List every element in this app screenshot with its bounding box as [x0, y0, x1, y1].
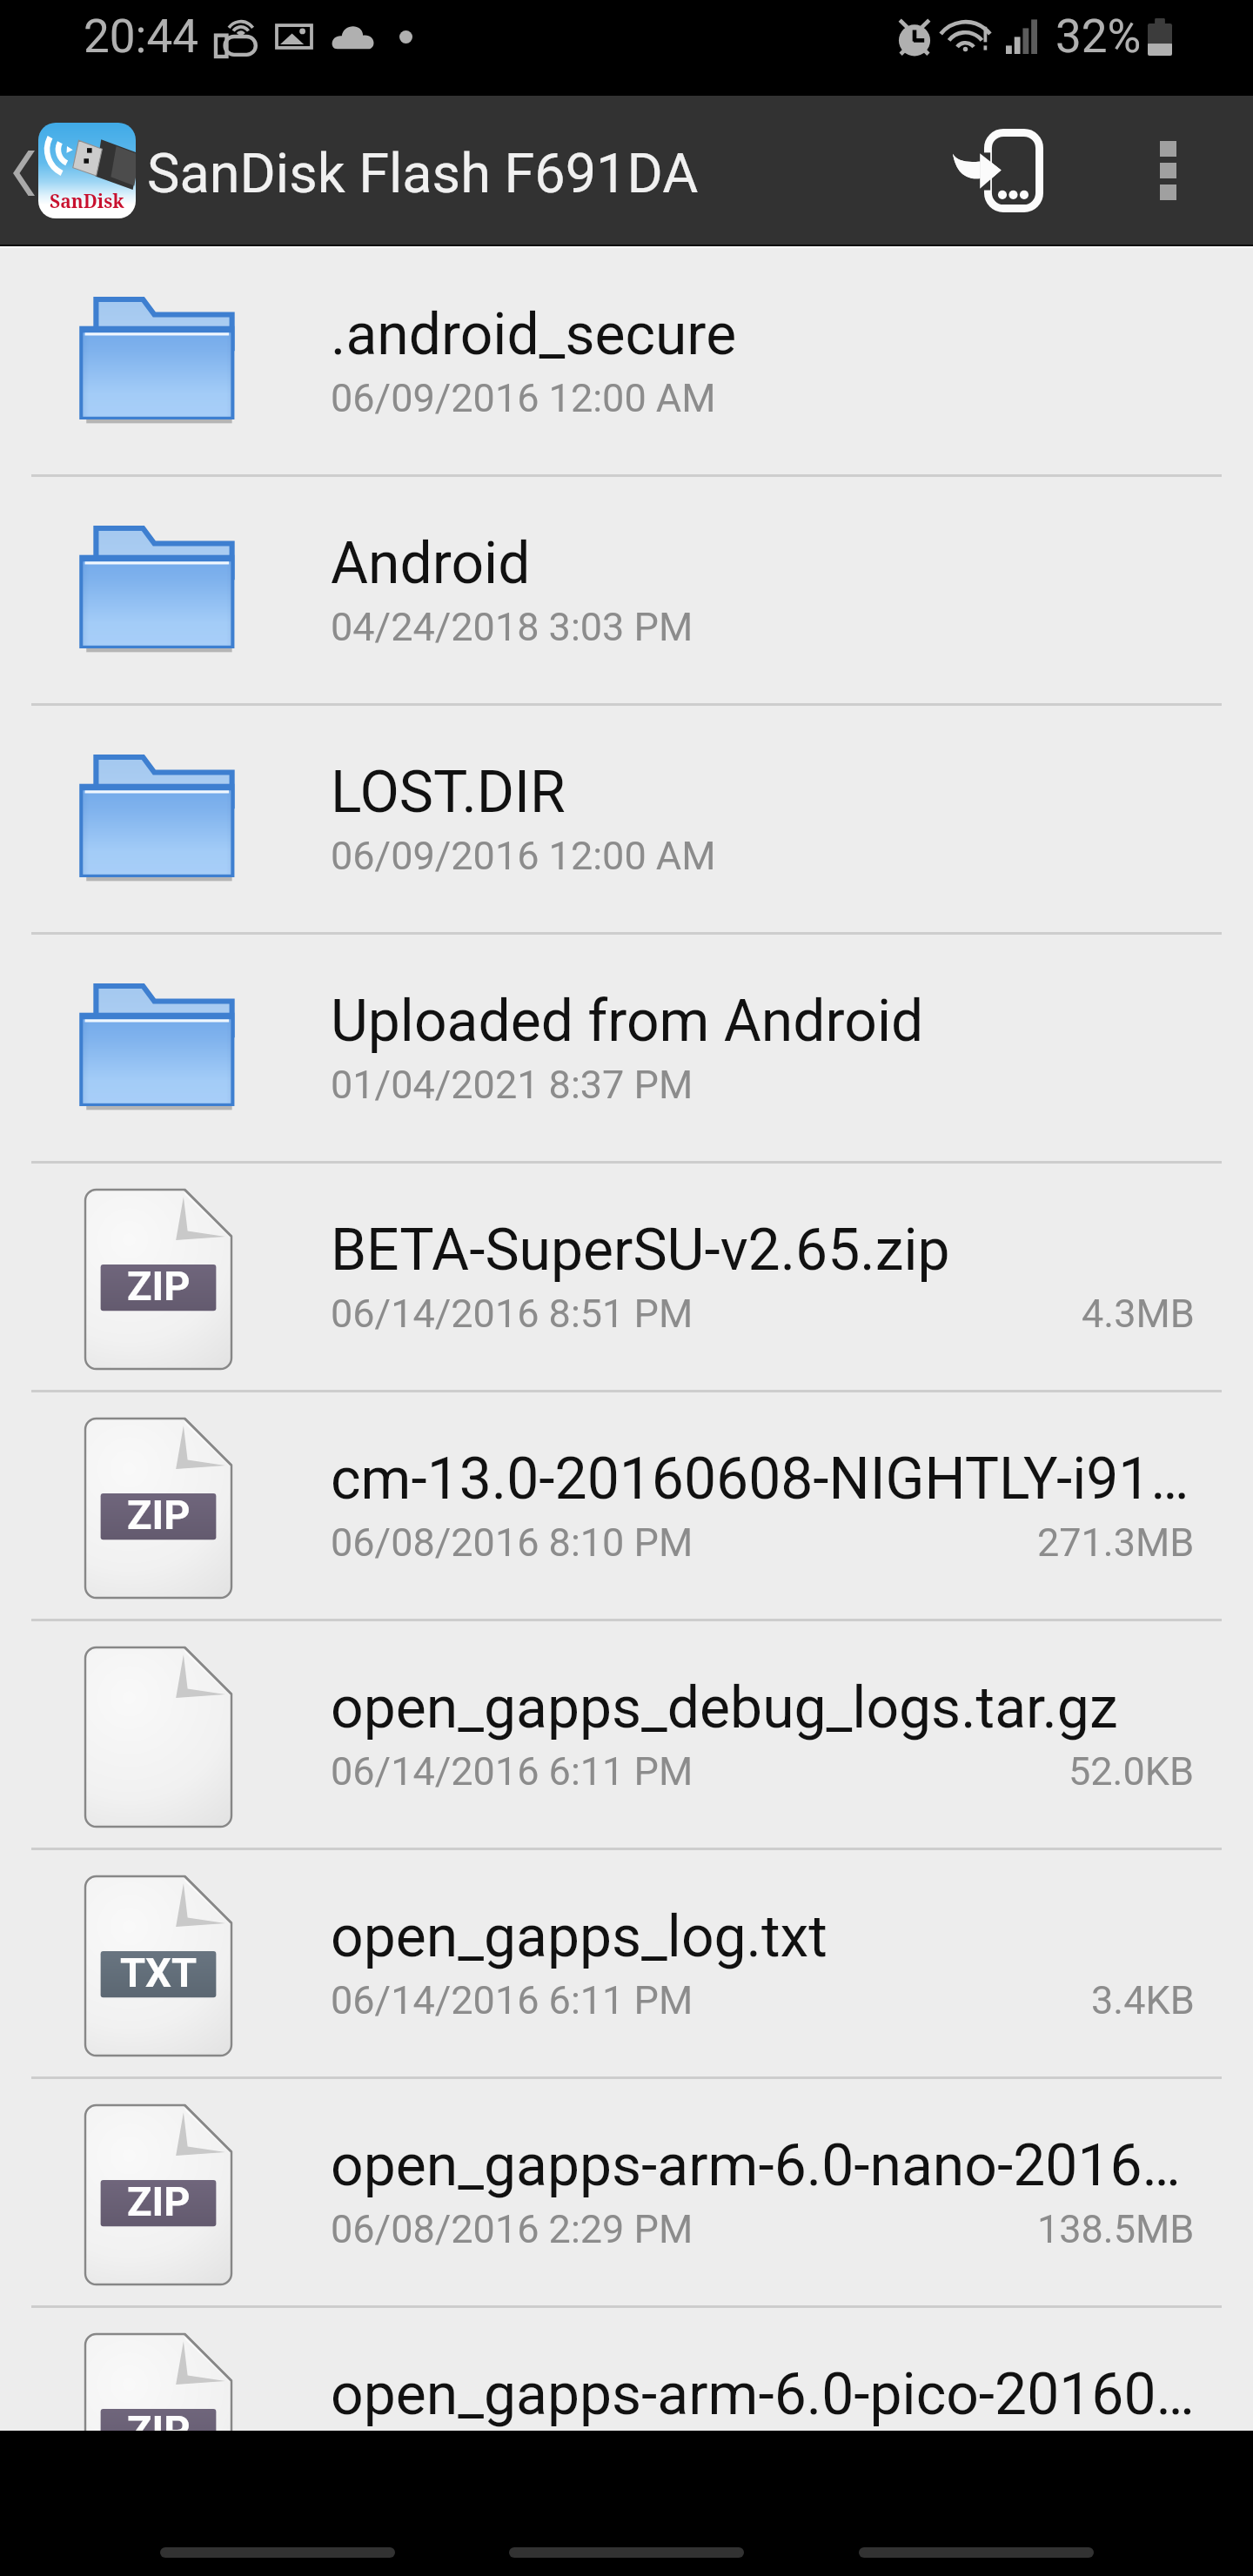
- staticText: ZIP: [127, 2177, 191, 2225]
- staticText: open_gapps-arm-6.0-pico-20160608.zip: [331, 2361, 1195, 2428]
- button[interactable]: More options: [1126, 96, 1210, 245]
- staticText: 06/09/2016 12:00 AM: [331, 833, 716, 879]
- staticText: 271.3MB: [1037, 1519, 1195, 1566]
- staticText: 06/08/2016 2:29 PM: [331, 2206, 694, 2252]
- button[interactable]: System navigation: [160, 2547, 395, 2558]
- staticText: 20:44: [84, 10, 198, 64]
- staticText: 4.3MB: [1082, 1291, 1195, 1337]
- staticText: 06/14/2016 6:11 PM: [331, 1748, 694, 1794]
- staticText: BETA-SuperSU-v2.65.zip: [331, 1217, 950, 1284]
- staticText: ZIP: [127, 1262, 191, 1310]
- staticText: open_gapps_debug_logs.tar.gz: [331, 1674, 1118, 1741]
- staticText: 06/14/2016 6:11 PM: [331, 1977, 694, 2023]
- staticText: 52.0KB: [1069, 1748, 1195, 1794]
- button[interactable]: ZIP: [0, 1392, 1253, 1619]
- button[interactable]: ZIP: [0, 1164, 1253, 1390]
- staticText: 3.4KB: [1091, 1977, 1195, 2023]
- button[interactable]: .android_secure: [0, 248, 1253, 474]
- staticText: open_gapps_log.txt: [331, 1903, 828, 1970]
- button[interactable]: TXT: [0, 1850, 1253, 2076]
- button[interactable]: Navigate up: [0, 96, 38, 245]
- button[interactable]: LOST.DIR: [0, 706, 1253, 932]
- staticText: .android_secure: [331, 301, 737, 368]
- staticText: 06/08/2016 8:10 PM: [331, 1519, 694, 1566]
- staticText: SanDisk Flash F691DA: [147, 142, 699, 206]
- staticText: ZIP: [127, 2406, 191, 2454]
- button[interactable]: open_gapps_debug_logs.tar.gz: [0, 1621, 1253, 1848]
- staticText: Android: [331, 530, 531, 597]
- staticText: open_gapps-arm-6.0-nano-20160608.zip: [331, 2132, 1195, 2199]
- staticText: LOST.DIR: [331, 759, 566, 826]
- staticText: 06/09/2016 12:00 AM: [331, 375, 716, 421]
- staticText: 04/24/2018 3:03 PM: [331, 604, 694, 650]
- staticText: ZIP: [127, 1491, 191, 1539]
- button[interactable]: Send to device: [933, 96, 1063, 245]
- button[interactable]: Android: [0, 477, 1253, 703]
- button[interactable]: ZIP: [0, 2308, 1253, 2534]
- button[interactable]: ZIP: [0, 2079, 1253, 2305]
- staticText: 32%: [1055, 10, 1142, 64]
- staticText: cm-13.0-20160608-NIGHTLY-i9100.zip: [331, 1446, 1195, 1513]
- staticText: TXT: [120, 1949, 198, 1996]
- staticText: 06/14/2016 8:51 PM: [331, 1291, 694, 1337]
- staticText: 138.5MB: [1037, 2206, 1195, 2252]
- button[interactable]: System navigation: [859, 2547, 1094, 2558]
- staticText: Uploaded from Android: [331, 988, 924, 1055]
- staticText: 01/04/2021 8:37 PM: [331, 1062, 694, 1108]
- button[interactable]: Uploaded from Android: [0, 935, 1253, 1161]
- staticText: SanDisk: [50, 189, 124, 214]
- button[interactable]: System navigation: [509, 2547, 744, 2558]
